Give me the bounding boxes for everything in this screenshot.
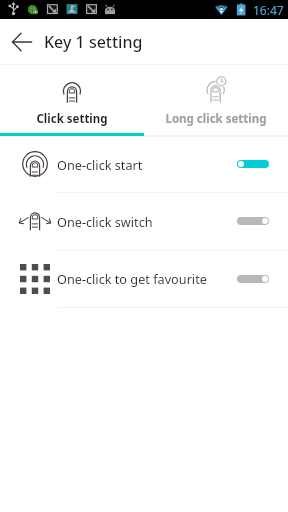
button[interactable]: Disabled [237,275,269,283]
staticText: Key 1 setting [44,31,143,53]
button[interactable]: Click setting [0,65,144,135]
button[interactable]: One-click switch [0,193,288,251]
button[interactable]: One-click start [0,137,288,193]
staticText: One-click start [57,156,237,173]
staticText: Click setting [36,111,108,127]
staticText: Long click setting [165,111,267,127]
button[interactable]: Navigate up [0,19,45,65]
staticText: One-click to get favourite [57,270,237,287]
button[interactable]: Long click setting [144,65,288,135]
staticText: 16:47 [253,2,284,18]
staticText: One-click switch [57,213,237,230]
button[interactable]: Disabled [237,217,269,225]
button[interactable]: Enabled [237,160,269,168]
button[interactable]: One-click to get favourite [0,251,288,308]
